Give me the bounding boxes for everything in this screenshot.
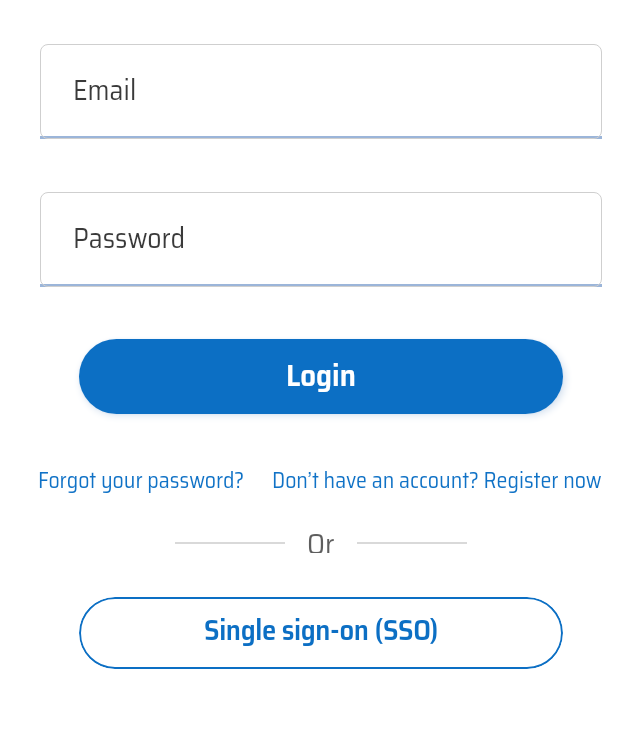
button[interactable]: Password xyxy=(40,192,602,287)
button[interactable]: Don’t have an account? Register now xyxy=(272,463,602,498)
button[interactable]: Single sign-on (SSO) xyxy=(79,597,563,669)
staticText: Single sign-on (SSO) xyxy=(204,607,439,653)
button[interactable]: Email xyxy=(40,44,602,139)
button[interactable]: Login xyxy=(79,339,563,414)
staticText: Or xyxy=(307,521,335,553)
staticText: Password xyxy=(73,216,186,260)
staticText: Login xyxy=(286,351,356,400)
staticText: Email xyxy=(73,68,137,112)
button[interactable]: Forgot your password? xyxy=(38,463,245,498)
